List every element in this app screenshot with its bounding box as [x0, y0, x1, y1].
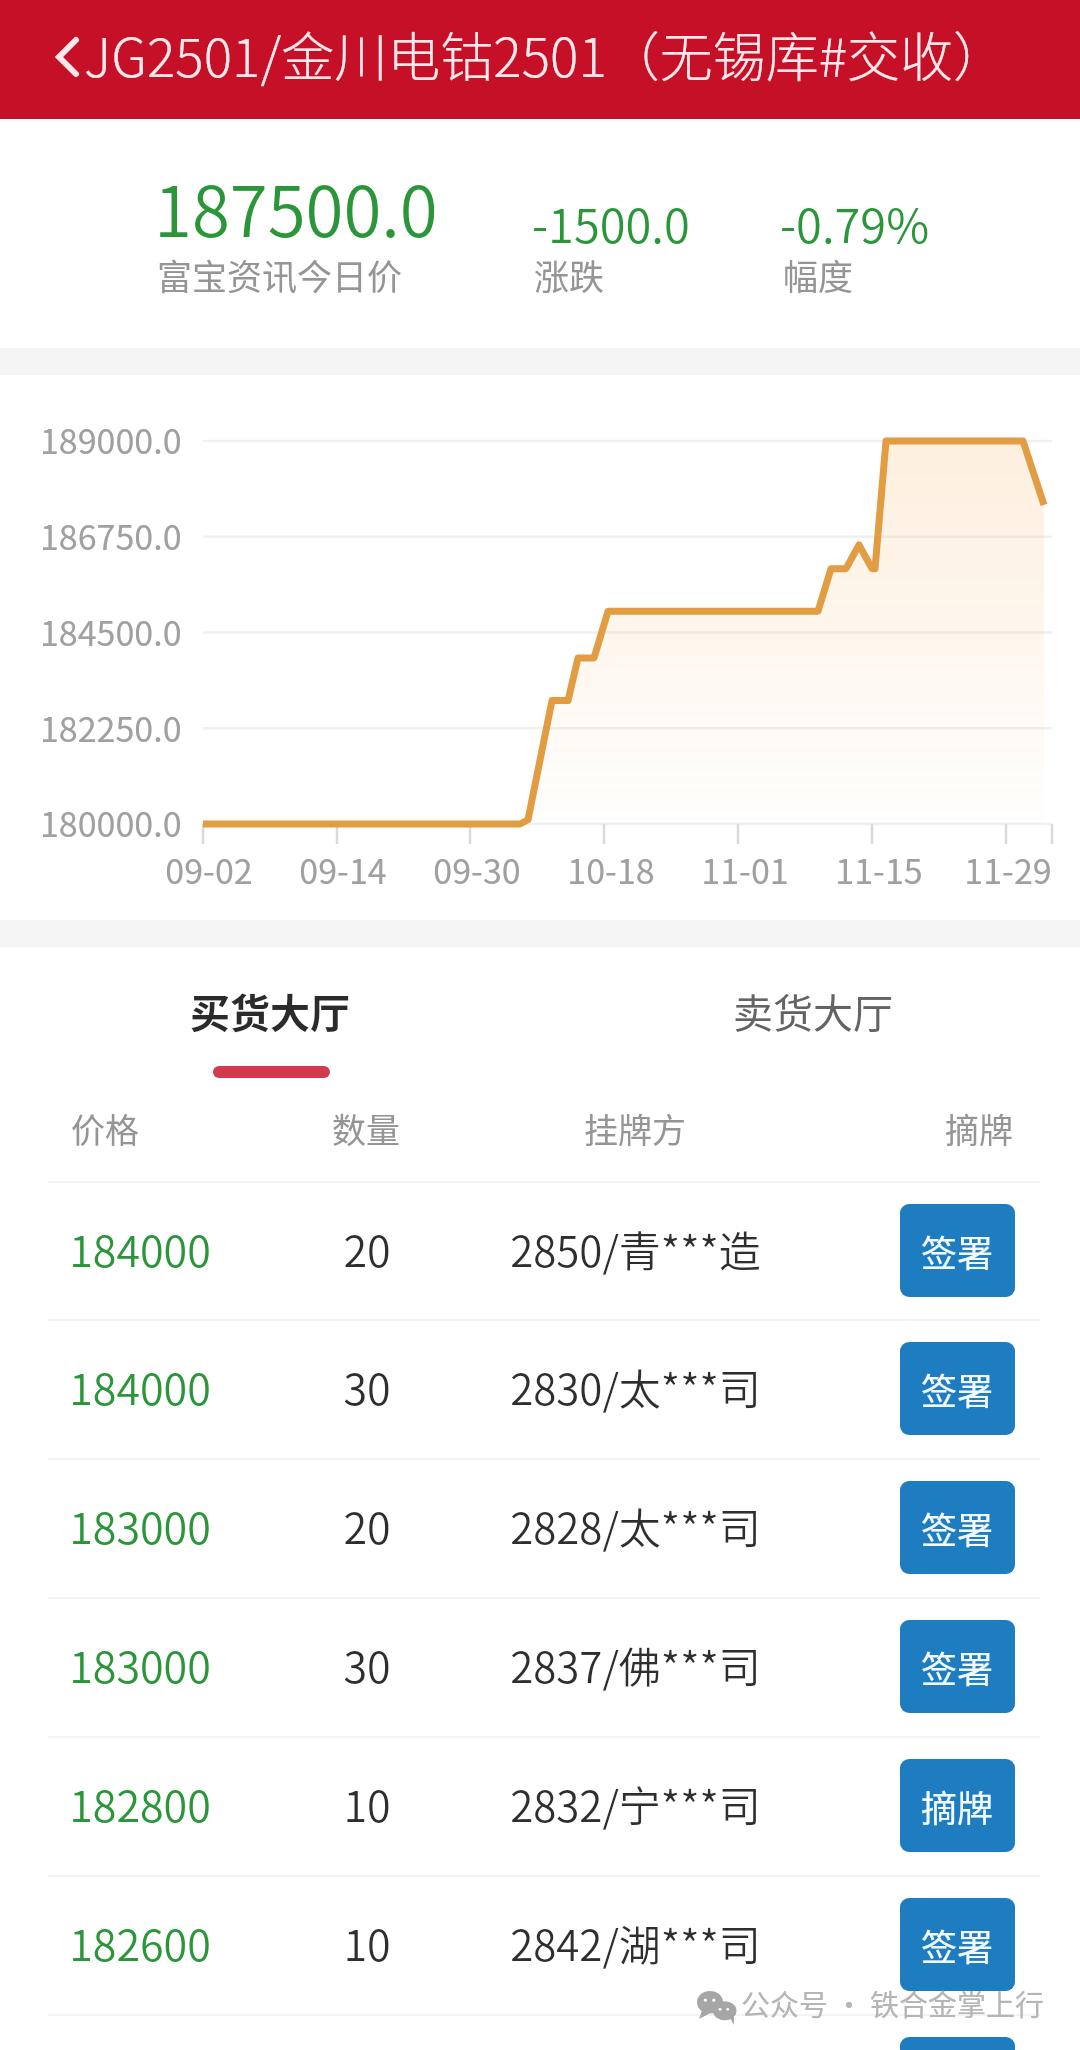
staticText: 公众号 · 铁合金掌上行 — [741, 1982, 1044, 2024]
button[interactable]: 182800 — [0, 1736, 1080, 1874]
staticText: 涨跌 — [534, 249, 605, 300]
staticText: 10-18 — [567, 845, 655, 894]
button[interactable]: JG2501/金川电钴2501（无锡库#交收） — [84, 16, 1007, 93]
staticText: 买货大厅 — [190, 982, 350, 1040]
staticText: 09-30 — [433, 845, 521, 894]
staticText: 签署 — [921, 1919, 994, 1971]
staticText: 2828/太***司 — [510, 1495, 761, 1556]
staticText: 30 — [343, 1633, 391, 1695]
staticText: 签署 — [921, 1641, 994, 1693]
staticText: 摘牌 — [921, 1780, 994, 1832]
staticText: 2837/佛***司 — [510, 1634, 761, 1695]
button[interactable]: 签署 — [900, 1481, 1015, 1574]
staticText: 卖货大厅 — [733, 982, 893, 1040]
button[interactable]: 签署 — [900, 1620, 1015, 1713]
staticText: 幅度 — [783, 249, 854, 300]
staticText: 30 — [343, 1355, 391, 1417]
staticText: 数量 — [332, 1104, 400, 1153]
staticText: 11-15 — [835, 845, 923, 894]
button[interactable]: 签署 — [900, 1898, 1015, 1991]
button[interactable]: Back — [30, 22, 102, 96]
staticText: 价格 — [71, 1104, 139, 1153]
staticText: 20 — [343, 1494, 391, 1556]
staticText: 2850/青***造 — [510, 1218, 761, 1279]
button[interactable]: Sign — [900, 2037, 1015, 2050]
staticText: JG2501/金川电钴2501（无锡库#交收） — [84, 16, 1007, 93]
staticText: 签署 — [921, 1225, 994, 1277]
staticText: 10 — [343, 1911, 391, 1973]
staticText: 10 — [343, 1772, 391, 1834]
staticText: 184000 — [69, 1217, 211, 1279]
button[interactable]: 183000 — [0, 1458, 1080, 1596]
staticText: 11-29 — [964, 845, 1052, 894]
staticText: 183000 — [69, 1633, 211, 1695]
staticText: 09-14 — [299, 845, 387, 894]
staticText: 2830/太***司 — [510, 1356, 761, 1417]
button[interactable]: 签署 — [900, 1204, 1015, 1297]
staticText: 183000 — [69, 1494, 211, 1556]
staticText: 182800 — [69, 1772, 211, 1834]
staticText: 182600 — [69, 1911, 211, 1973]
staticText: 187500.0 — [154, 157, 438, 257]
staticText: 184000 — [69, 1355, 211, 1417]
button[interactable]: 买货大厅 — [120, 955, 420, 1067]
staticText: 09-02 — [165, 845, 253, 894]
staticText: 2842/湖***司 — [510, 1912, 761, 1973]
staticText: 签署 — [921, 1363, 994, 1415]
button[interactable]: 184000 — [0, 1319, 1080, 1457]
staticText: 184500.0 — [40, 607, 182, 656]
button[interactable]: 184000 — [0, 1181, 1080, 1319]
staticText: 180000.0 — [40, 798, 182, 847]
button[interactable]: 摘牌 — [900, 1759, 1015, 1852]
staticText: -0.79% — [780, 188, 930, 256]
staticText: 186750.0 — [40, 511, 182, 560]
staticText: 签署 — [921, 1502, 994, 1554]
staticText: 摘牌 — [945, 1104, 1013, 1153]
button[interactable]: 183000 — [0, 1597, 1080, 1735]
staticText: 20 — [343, 1217, 391, 1279]
staticText: 挂牌方 — [584, 1104, 686, 1153]
staticText: 182250.0 — [40, 703, 182, 752]
button[interactable]: 卖货大厅 — [663, 955, 963, 1067]
staticText: 11-01 — [701, 845, 789, 894]
staticText: 189000.0 — [40, 415, 182, 464]
staticText: -1500.0 — [532, 188, 690, 256]
staticText: 富宝资讯今日价 — [157, 249, 403, 300]
staticText: 2832/宁***司 — [510, 1773, 761, 1834]
button[interactable]: 182600 — [0, 1875, 1080, 2013]
button[interactable]: 签署 — [900, 1342, 1015, 1435]
